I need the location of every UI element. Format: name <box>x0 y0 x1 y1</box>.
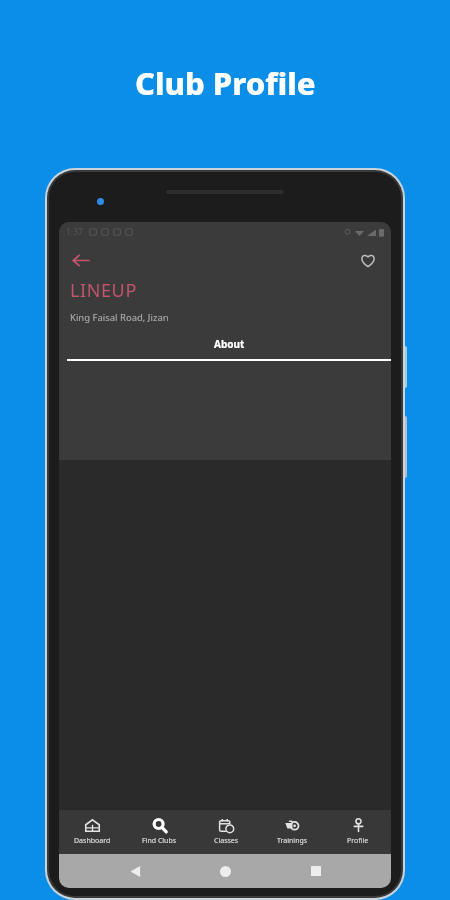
staticText: Trainings <box>277 836 308 846</box>
staticText: LINEUP <box>70 278 137 303</box>
staticText: Classes <box>214 836 239 846</box>
staticText: About <box>214 337 245 351</box>
button[interactable]: Profile <box>325 810 391 854</box>
staticText: Club Profile <box>135 62 316 104</box>
button[interactable]: Back <box>63 243 97 277</box>
button[interactable]: About <box>67 335 391 361</box>
staticText: Dashboard <box>74 836 111 846</box>
button[interactable]: Trainings <box>259 810 325 854</box>
staticText: Profile <box>347 836 369 846</box>
button[interactable]: Classes <box>193 810 259 854</box>
button[interactable]: Find Clubs <box>126 810 193 854</box>
staticText: Find Clubs <box>142 836 177 846</box>
button[interactable]: Back <box>120 856 150 886</box>
button[interactable]: Home <box>210 856 240 886</box>
button[interactable]: Favorite <box>351 243 385 277</box>
button[interactable]: Recent apps <box>301 856 331 886</box>
staticText: 1:37 <box>66 226 83 238</box>
staticText: King Faisal Road, Jizan <box>70 311 169 324</box>
button[interactable]: Dashboard <box>59 810 126 854</box>
